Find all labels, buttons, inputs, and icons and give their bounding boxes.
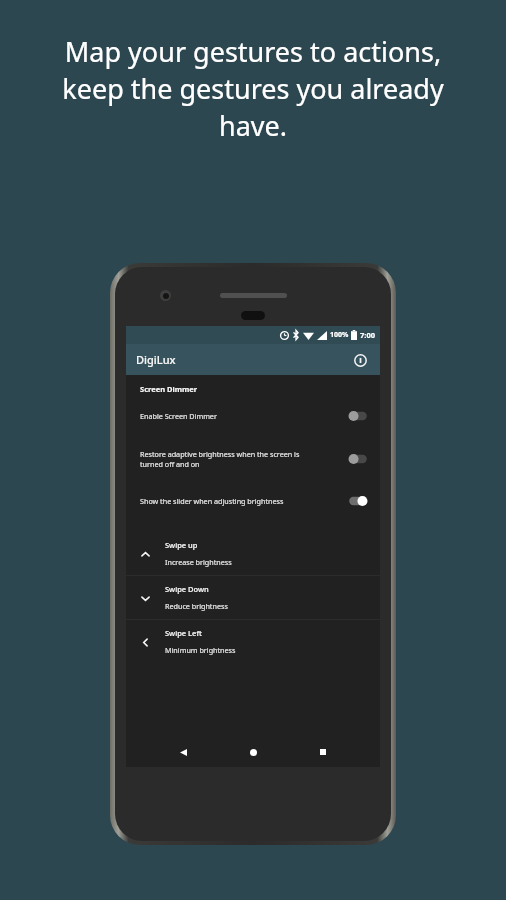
button[interactable]: Restore adaptive brightness when the scr… [126,446,380,472]
button[interactable]: Back [170,739,196,765]
button[interactable]: Info [348,348,372,372]
staticText: Reduce brightness [165,601,228,611]
button[interactable]: Swipe Down [126,576,380,619]
staticText: DigiLux [136,352,176,367]
button[interactable]: Recent apps [310,739,336,765]
staticText: Map your gestures to actions, keep the g… [62,33,444,144]
staticText: Swipe Down [165,584,209,594]
button[interactable]: Enable Screen Dimmer [126,404,380,428]
staticText: 100% [330,330,349,340]
button[interactable]: Swipe up [126,532,380,575]
staticText: turned off and on [140,459,200,469]
staticText: 7:00 [360,330,375,340]
staticText: Screen Dimmer [140,384,198,394]
staticText: Increase brightness [165,557,232,567]
button[interactable]: Show the slider when adjusting brightnes… [126,489,380,513]
staticText: Swipe Left [165,628,202,638]
staticText: Enable Screen Dimmer [140,411,217,421]
button[interactable]: Swipe Left [126,620,380,663]
staticText: Swipe up [165,540,198,550]
staticText: Restore adaptive brightness when the scr… [140,449,300,459]
staticText: Minimum brightness [165,645,236,655]
button[interactable]: Home [240,739,266,765]
staticText: Show the slider when adjusting brightnes… [140,496,284,506]
